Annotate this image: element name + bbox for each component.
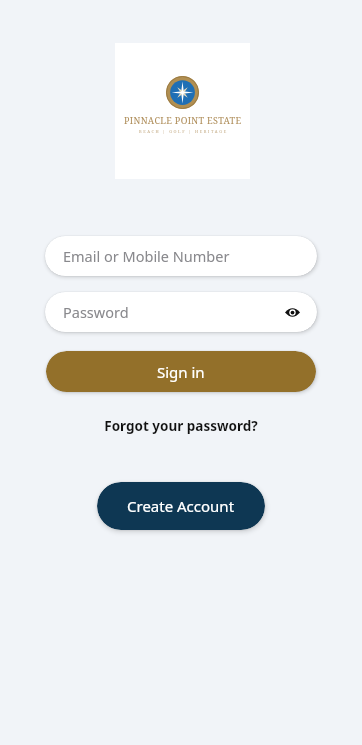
staticText: B E A C H | G O L F | H E R I T A G E [139,129,227,134]
button[interactable]: Show password [281,301,303,323]
button[interactable]: Password [45,292,317,332]
staticText: Create Account [127,496,235,516]
button[interactable]: Forgot your password? [94,413,268,439]
button[interactable]: Create Account [97,482,265,530]
staticText: Password [63,302,129,322]
staticText: Email or Mobile Number [63,246,230,266]
button[interactable]: Email or Mobile Number [45,236,317,276]
staticText: Sign in [157,362,205,382]
button[interactable]: Sign in [46,351,316,392]
staticText: Forgot your password? [104,417,258,435]
staticText: PINNACLE POINT ESTATE [124,114,242,126]
